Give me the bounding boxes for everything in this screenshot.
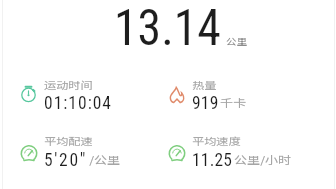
- staticText: 5'20": [44, 150, 88, 168]
- staticText: 平均配速: [44, 134, 93, 148]
- staticText: 千卡: [220, 95, 247, 109]
- staticText: 公里: [226, 34, 247, 47]
- staticText: 01:10:04: [44, 93, 113, 111]
- staticText: 公里/小时: [234, 152, 292, 166]
- other: Speed: [20, 145, 38, 163]
- button[interactable]: Calories: [168, 77, 316, 113]
- staticText: 11.25: [192, 150, 233, 168]
- staticText: 919: [192, 93, 219, 111]
- staticText: 热量: [192, 78, 217, 92]
- button[interactable]: Speed: [168, 133, 316, 169]
- staticText: 13.14: [114, 0, 221, 55]
- staticText: 运动时间: [44, 78, 93, 92]
- staticText: 平均速度: [192, 134, 241, 148]
- other: Calories: [168, 86, 186, 104]
- other: Duration: [20, 85, 37, 102]
- staticText: /公里: [89, 152, 121, 166]
- button[interactable]: Duration: [20, 77, 168, 113]
- other: Speed: [168, 145, 186, 163]
- button[interactable]: Speed: [20, 133, 168, 169]
